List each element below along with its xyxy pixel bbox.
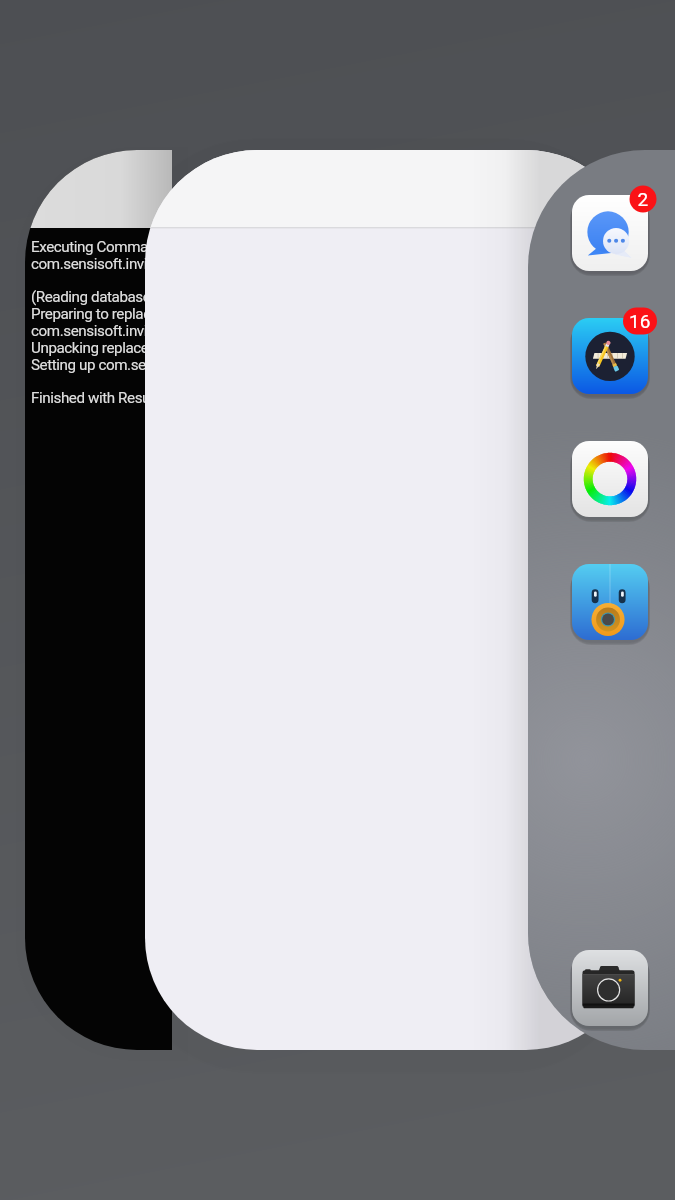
button[interactable]: Invisiblock app card (145, 150, 528, 1050)
button[interactable]: Home screen card (528, 150, 675, 1050)
other: App switcher (0, 0, 675, 1200)
button[interactable]: Messages, 2 unread (572, 195, 648, 271)
button[interactable]: Terminal app card (25, 150, 172, 1050)
button[interactable]: Tweetbot (572, 564, 648, 640)
button[interactable]: Camera (572, 950, 648, 1026)
button[interactable]: App Store, 16 updates (572, 318, 648, 394)
button[interactable] (0, 0, 675, 1200)
button[interactable]: Color wheel app (572, 441, 648, 517)
